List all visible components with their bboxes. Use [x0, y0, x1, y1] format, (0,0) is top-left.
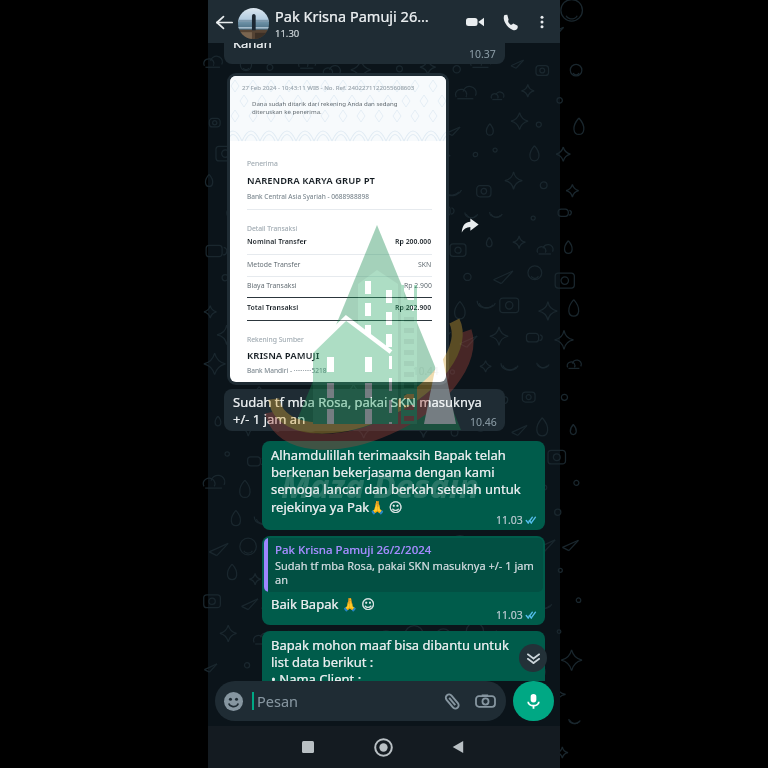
staticText: Penerima [247, 159, 278, 168]
staticText: Baik Bapak 🙏 ☺ [271, 595, 375, 613]
staticText: Pak Krisna Pamuji 26… [275, 6, 429, 26]
button[interactable]: Profile photo [238, 8, 269, 39]
staticText: Rp 2.900 [404, 281, 432, 290]
staticText: KRISNA PAMUJI [247, 349, 320, 362]
staticText: 27 Feb 2024 - 10:43:11 WIB - No. Ref. 24… [242, 83, 415, 91]
staticText: Dana sudah ditarik dari rekening Anda da… [252, 99, 398, 116]
staticText: Pesan [257, 691, 298, 711]
button[interactable]: More options [528, 8, 556, 36]
staticText: NARENDRA KARYA GRUP PT [247, 174, 375, 187]
staticText: Rekening Sumber [247, 335, 304, 344]
staticText: Sudah tf mba Rosa, pakai SKN masuknya +/… [275, 558, 538, 587]
button[interactable]: Call [495, 7, 525, 37]
staticText: Kanan [233, 43, 272, 52]
staticText: Sudah tf mba Rosa, pakai SKN masuknya +/… [233, 393, 482, 428]
staticText: 10.44 [413, 364, 439, 378]
staticText: 11.30 [275, 27, 300, 40]
staticText: Biaya Transaksi [247, 281, 297, 290]
staticText: Detail Transaksi [247, 224, 298, 233]
button[interactable]: Sudah tf mba Rosa, pakai SKN masuknya +/… [224, 389, 505, 431]
button[interactable]: Back [211, 9, 237, 35]
staticText: Metode Transfer [247, 260, 301, 269]
staticText: 11.03 [496, 513, 523, 527]
staticText: Pak Krisna Pamuji 26/2/2024 [275, 542, 432, 558]
staticText: Nominal Transfer [247, 237, 307, 246]
staticText: Alhamdulillah terimaaksih Bapak telah be… [271, 446, 536, 515]
staticText: 11.03 [496, 608, 523, 622]
staticText: Total Transaksi [247, 303, 299, 312]
staticText: 10.46 [470, 415, 497, 429]
staticText: Rp 202.900 [395, 303, 432, 312]
staticText: Rp 200.000 [395, 237, 432, 246]
button[interactable]: 27 Feb 2024 - 10:43:11 WIB - No. Ref. 24… [227, 73, 449, 385]
staticText: SKN [418, 260, 432, 269]
other: Attach [443, 692, 462, 711]
button[interactable]: Pak Krisna Pamuji 26/2/2024 [262, 536, 545, 625]
button[interactable]: Pesan [215, 681, 506, 721]
button[interactable]: Bapak mohon maaf bisa dibantu untuk list… [262, 631, 545, 681]
button[interactable]: Video call [460, 7, 490, 37]
staticText: 10.37 [469, 47, 496, 61]
other: Camera [476, 692, 495, 711]
button[interactable]: Scroll to bottom [519, 644, 547, 672]
staticText: Bank Central Asia Syariah - 0688988898 [247, 192, 369, 201]
staticText: Maza Desain [281, 463, 479, 508]
button[interactable]: Voice message [513, 681, 554, 721]
button[interactable]: Recents [288, 727, 328, 767]
button[interactable]: Home [363, 727, 403, 767]
staticText: Bapak mohon maaf bisa dibantu untuk list… [271, 636, 510, 681]
other: Forward [461, 217, 479, 235]
staticText: Bank Mandiri - ··········5218 [247, 366, 327, 375]
button[interactable]: Back [439, 727, 479, 767]
button[interactable]: Alhamdulillah terimaaksih Bapak telah be… [262, 441, 545, 530]
